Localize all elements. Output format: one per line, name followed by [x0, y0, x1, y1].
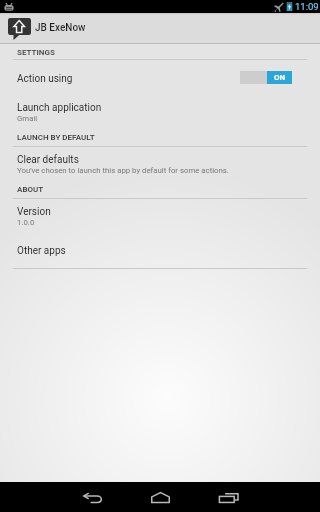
staticText: Other apps [17, 245, 66, 257]
staticText: Action using [17, 73, 73, 85]
staticText: SETTINGS [17, 48, 55, 57]
button[interactable]: Back [77, 482, 107, 512]
staticText: Gmail [17, 114, 38, 123]
button[interactable]: Version [0, 199, 320, 232]
button[interactable]: Action using [0, 60, 320, 94]
staticText: Clear defaults [17, 154, 79, 166]
staticText: Launch application [17, 102, 102, 114]
button[interactable]: Launch application [0, 94, 320, 126]
button[interactable]: Home [145, 482, 175, 512]
staticText: ABOUT [17, 185, 44, 194]
staticText: 11:09 [295, 1, 319, 12]
staticText: 1.0.0 [17, 218, 35, 227]
staticText: LAUNCH BY DEFAULT [17, 133, 95, 142]
staticText: Version [17, 206, 51, 218]
staticText: JB ExeNow [35, 22, 86, 34]
button[interactable]: Recent apps [213, 482, 243, 512]
staticText: You've chosen to launch this app by defa… [17, 166, 229, 175]
staticText: ON [274, 73, 286, 82]
button[interactable]: Other apps [0, 232, 320, 268]
button[interactable]: Clear defaults [0, 147, 320, 179]
